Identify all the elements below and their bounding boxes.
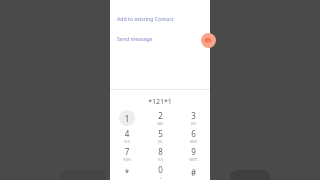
button[interactable]: # (177, 163, 210, 180)
button[interactable]: Send message (110, 32, 210, 44)
button[interactable]: *121*1 (110, 95, 210, 108)
staticText: ABC (144, 122, 177, 126)
button[interactable]: 7 (110, 145, 144, 163)
button[interactable]: Add to existing Contact (110, 12, 210, 24)
staticText: DEF (177, 122, 210, 126)
staticText: 7 (110, 146, 144, 157)
staticText: # (177, 167, 210, 178)
button[interactable]: 8 (144, 145, 177, 163)
staticText: JKL (144, 140, 177, 144)
staticText: 3 (177, 110, 210, 121)
staticText: 4 (110, 128, 144, 139)
button[interactable]: 1 (110, 109, 144, 127)
button[interactable]: 5 (144, 127, 177, 145)
staticText: 2 (144, 110, 177, 121)
button[interactable]: 3 (177, 109, 210, 127)
staticText: WXYZ (177, 158, 210, 162)
staticText: 1 (110, 113, 144, 124)
staticText: 6 (177, 128, 210, 139)
button[interactable]: App badge (201, 33, 216, 48)
staticText: 0 (144, 164, 177, 175)
staticText: * (110, 167, 144, 178)
button[interactable]: 2 (144, 109, 177, 127)
staticText: 5 (144, 128, 177, 139)
button[interactable]: 4 (110, 127, 144, 145)
button[interactable]: 0 (144, 163, 177, 180)
staticText: Add to existing Contact (117, 15, 174, 22)
button[interactable]: 9 (177, 145, 210, 163)
staticText: Send message (117, 35, 153, 42)
staticText: 9 (177, 146, 210, 157)
button[interactable]: 6 (177, 127, 210, 145)
staticText: GHI (110, 140, 144, 144)
staticText: 8 (144, 146, 177, 157)
button[interactable]: * (110, 163, 144, 180)
staticText: TUV (144, 158, 177, 162)
staticText: + (144, 176, 177, 180)
staticText: MNO (177, 140, 210, 144)
staticText: *121*1 (110, 97, 210, 107)
staticText: PQRS (110, 158, 144, 162)
